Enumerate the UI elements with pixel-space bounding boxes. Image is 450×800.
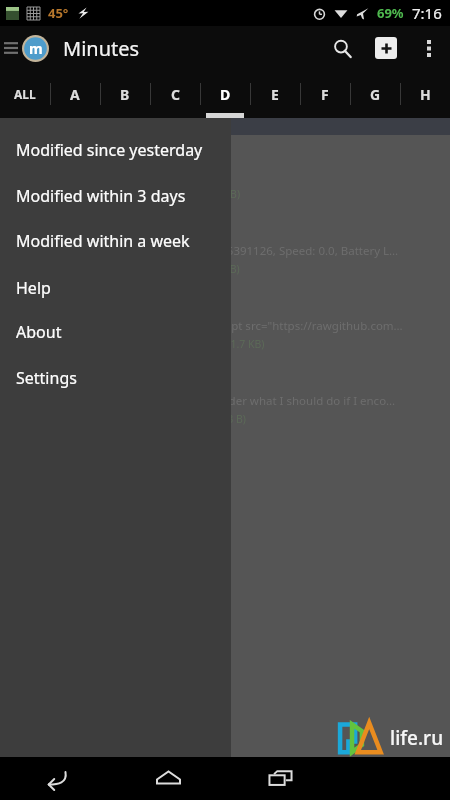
staticText: 7:16 — [412, 3, 442, 23]
button[interactable]: D — [200, 70, 250, 118]
staticText: life.ru — [390, 725, 444, 751]
staticText: Time: 14:30, Location: 35.79716117,-78.8… — [8, 243, 399, 259]
staticText: Modified within 3 days — [16, 185, 186, 207]
button[interactable]: Dropbox Notes — [0, 360, 450, 435]
staticText: Modified: Tuesday, Aug 06, 2013 7:26 AM … — [8, 412, 246, 426]
staticText: H — [420, 85, 431, 104]
staticText: Help — [16, 277, 51, 299]
staticText: B — [120, 85, 130, 104]
staticText: Modified: Wednesday, Dec 31, 1969 6:59 P… — [8, 337, 265, 351]
button[interactable]: Modified since yesterday — [0, 127, 231, 172]
staticText: 45° — [48, 4, 69, 22]
button[interactable]: Add note — [364, 26, 408, 70]
staticText: m — [29, 39, 43, 58]
staticText: Modified since yesterday — [16, 139, 203, 161]
staticText: Do settings — [8, 293, 94, 313]
staticText: Device info — [8, 218, 91, 238]
staticText: Modified: Monday, Aug 04, 2014 4:44 PM (… — [8, 262, 240, 276]
button[interactable]: F — [300, 70, 350, 118]
button[interactable]: About — [0, 309, 231, 354]
staticText: G — [370, 85, 381, 104]
button[interactable]: G — [350, 70, 400, 118]
staticText: A — [70, 85, 80, 104]
staticText: Modified: Sunday, Sep 08, 2013 3:31 PM (… — [8, 187, 241, 201]
button[interactable]: B — [100, 70, 150, 118]
button[interactable]: Open navigation drawer — [0, 26, 22, 70]
button[interactable]: Help — [0, 265, 231, 310]
staticText: <div id="container"></div> <head> <scrip… — [8, 318, 403, 334]
button[interactable]: Device info — [0, 210, 450, 285]
button[interactable]: Back — [0, 757, 112, 800]
staticText: ALL — [14, 86, 36, 102]
button[interactable]: Do settings — [0, 285, 450, 360]
staticText: 69% — [377, 4, 404, 22]
button[interactable]: Modified within a week — [0, 218, 231, 263]
staticText: Settings — [16, 367, 77, 389]
button[interactable]: Modified within 3 days — [0, 173, 231, 218]
button[interactable]: E — [250, 70, 300, 118]
button[interactable]: H — [400, 70, 450, 118]
staticText: About — [16, 321, 62, 343]
staticText: F — [321, 85, 329, 104]
staticText: Dropbox Notes — [8, 368, 120, 388]
button[interactable]: DashClock Extensions — [0, 135, 450, 210]
button[interactable]: A — [50, 70, 100, 118]
button[interactable]: ALL — [0, 70, 50, 118]
button[interactable]: Settings — [0, 355, 231, 400]
button[interactable]: Home — [112, 757, 224, 800]
button[interactable]: C — [150, 70, 200, 118]
staticText: DashClock Extensions — [8, 143, 171, 163]
staticText: Modified within a week — [16, 230, 190, 252]
staticText: D — [220, 85, 231, 104]
staticText: Minutes — [63, 35, 140, 62]
staticText: 2013/08/06 (Tue) 7:23 AM EDT [32] I wond… — [8, 393, 396, 409]
button[interactable]: More options — [408, 27, 450, 69]
button[interactable]: Recent apps — [224, 757, 337, 800]
staticText: C — [171, 85, 180, 104]
staticText: E — [271, 85, 279, 104]
button[interactable]: Search — [320, 26, 364, 70]
